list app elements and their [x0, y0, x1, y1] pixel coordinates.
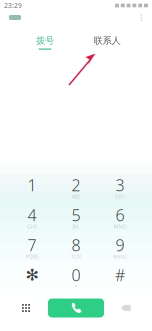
staticText: 5 — [71, 204, 80, 226]
button[interactable]: 5 — [54, 207, 98, 237]
staticText: 拨号 — [36, 35, 54, 46]
staticText: DEF — [115, 193, 125, 200]
staticText: ✻ — [25, 266, 38, 284]
button[interactable]: Delete — [104, 297, 148, 319]
button[interactable]: 拨号 — [14, 32, 76, 53]
button[interactable]: Menu — [4, 12, 26, 23]
button[interactable]: # — [98, 267, 142, 297]
button[interactable]: Keypad — [4, 297, 48, 319]
staticText: 7 — [27, 234, 36, 256]
staticText: PQRS — [25, 253, 38, 260]
staticText: MNO — [113, 223, 126, 230]
staticText: 8 — [71, 234, 80, 256]
button[interactable]: More options — [135, 11, 148, 24]
button[interactable]: 联系人 — [76, 32, 138, 53]
staticText: 9 — [115, 234, 124, 256]
button[interactable]: 9 — [98, 237, 142, 267]
staticText: 23:29 — [4, 1, 22, 10]
button[interactable]: 2 — [54, 177, 98, 207]
staticText: 2 — [71, 174, 80, 196]
button[interactable]: 6 — [98, 207, 142, 237]
staticText: 4 — [27, 204, 36, 226]
staticText: 0 — [71, 264, 80, 286]
staticText: ABC — [71, 193, 80, 200]
button[interactable]: 0 — [54, 267, 98, 297]
staticText: 6 — [115, 204, 124, 226]
staticText: TUV — [71, 253, 81, 260]
staticText: 1 — [27, 174, 36, 196]
staticText: # — [115, 264, 125, 286]
staticText: + — [74, 283, 77, 290]
button[interactable]: 3 — [98, 177, 142, 207]
button[interactable]: ✻ — [10, 267, 54, 297]
button[interactable]: 4 — [10, 207, 54, 237]
staticText: GHI — [27, 223, 37, 230]
staticText: 3 — [115, 174, 124, 196]
staticText: 联系人 — [93, 35, 120, 46]
button[interactable]: 8 — [54, 237, 98, 267]
button[interactable]: 7 — [10, 237, 54, 267]
button[interactable]: Call — [48, 298, 104, 317]
button[interactable]: 1 — [10, 177, 54, 207]
staticText: JKL — [72, 223, 79, 230]
staticText: WXYZ — [113, 253, 127, 260]
